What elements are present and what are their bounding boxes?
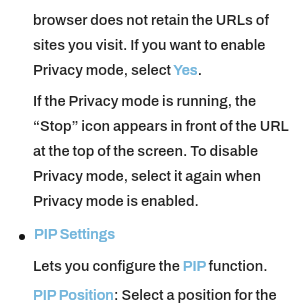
staticText: sites you visit. If you want to enable bbox=[33, 37, 266, 53]
button[interactable]: Bullet bbox=[12, 222, 109, 246]
staticText: Privacy mode, select Yes. bbox=[33, 62, 203, 78]
staticText: Privacy mode, select it again when bbox=[33, 168, 261, 184]
staticText: Privacy mode is enabled. bbox=[33, 193, 199, 209]
staticText: “Stop” icon appears in front of the URL bbox=[33, 118, 289, 134]
staticText: browser does not retain the URLs of bbox=[33, 12, 269, 28]
staticText: If the Privacy mode is running, the bbox=[33, 93, 257, 109]
staticText: Lets you configure the PIP function. bbox=[33, 258, 268, 274]
staticText: PIP Settings bbox=[34, 226, 116, 242]
staticText: at the top of the screen. To disable bbox=[33, 143, 259, 159]
other: Bullet bbox=[19, 234, 25, 240]
staticText: PIP Position: Select a position for the bbox=[33, 287, 277, 303]
